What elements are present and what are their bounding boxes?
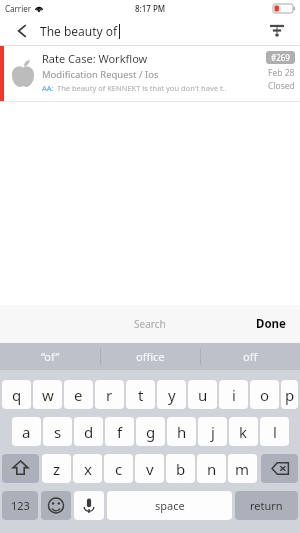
button[interactable]: Done (256, 316, 286, 332)
staticText: 123 (11, 498, 30, 513)
button[interactable]: f (105, 417, 134, 446)
button[interactable]: u (188, 380, 217, 409)
staticText: return (250, 498, 283, 513)
staticText: g (146, 422, 156, 442)
staticText: y (168, 385, 176, 405)
button[interactable]: i (219, 380, 248, 409)
staticText: h (177, 422, 187, 442)
staticText: s (54, 422, 62, 442)
staticText: Modification Request / Ios (42, 68, 159, 81)
staticText: w (42, 385, 54, 405)
button[interactable]: p (281, 380, 298, 409)
button[interactable]: “of” (0, 343, 100, 370)
button[interactable]: Dictation (74, 491, 104, 520)
staticText: a (22, 422, 31, 442)
staticText: c (115, 459, 123, 479)
staticText: n (207, 459, 217, 479)
staticText: u (198, 385, 208, 405)
button[interactable]: b (166, 454, 195, 483)
button[interactable]: w (33, 380, 62, 409)
staticText: m (235, 459, 250, 479)
button[interactable]: j (198, 417, 227, 446)
staticText: j (211, 422, 215, 442)
staticText: q (12, 385, 22, 405)
staticText: The beauty of KENNEKT is that you don't … (57, 83, 227, 93)
button[interactable]: e (64, 380, 93, 409)
staticText: d (84, 422, 94, 442)
staticText: i (232, 385, 236, 405)
button[interactable]: s (43, 417, 72, 446)
button[interactable]: n (197, 454, 226, 483)
staticText: o (260, 385, 270, 405)
staticText: e (74, 385, 83, 405)
button[interactable]: Back (10, 19, 34, 43)
button[interactable]: off (201, 343, 300, 370)
staticText: k (239, 422, 248, 442)
button[interactable]: Delete (261, 454, 298, 483)
staticText: #269 (271, 52, 290, 63)
button[interactable]: t (126, 380, 155, 409)
staticText: Closed (268, 80, 295, 92)
button[interactable]: m (228, 454, 257, 483)
staticText: t (138, 385, 144, 405)
button[interactable]: 123 (2, 491, 38, 520)
button[interactable]: Rate Case: Workflow (0, 46, 300, 101)
button[interactable]: a (12, 417, 41, 446)
button[interactable]: l (260, 417, 289, 446)
staticText: The beauty of (40, 23, 118, 39)
button[interactable]: space (107, 491, 232, 520)
staticText: AA: (42, 83, 54, 93)
staticText: Feb 28 (268, 67, 295, 79)
button[interactable]: h (167, 417, 196, 446)
staticText: p (285, 385, 295, 405)
button[interactable]: g (136, 417, 165, 446)
staticText: 8:17 PM (135, 3, 166, 14)
button[interactable]: return (235, 491, 298, 520)
staticText: v (146, 459, 154, 479)
button[interactable]: v (135, 454, 164, 483)
staticText: Done (256, 316, 286, 332)
staticText: Carrier (5, 3, 32, 14)
button[interactable]: z (42, 454, 71, 483)
staticText: b (176, 459, 186, 479)
button[interactable]: Search (134, 317, 166, 331)
button[interactable]: o (250, 380, 279, 409)
staticText: r (106, 385, 113, 405)
button[interactable]: q (2, 380, 31, 409)
button[interactable]: d (74, 417, 103, 446)
button[interactable]: r (95, 380, 124, 409)
staticText: space (155, 498, 185, 513)
staticText: f (117, 422, 123, 442)
button[interactable]: office (101, 343, 200, 370)
button[interactable]: x (73, 454, 102, 483)
staticText: office (136, 349, 165, 364)
button[interactable]: c (104, 454, 133, 483)
staticText: x (84, 459, 92, 479)
button[interactable]: Shift (2, 454, 39, 483)
button[interactable]: y (157, 380, 186, 409)
staticText: z (53, 459, 61, 479)
button[interactable]: Filter (264, 18, 290, 44)
button[interactable]: k (229, 417, 258, 446)
staticText: off (243, 349, 258, 364)
staticText: “of” (41, 349, 60, 364)
staticText: Rate Case: Workflow (42, 51, 148, 66)
staticText: l (273, 422, 277, 442)
button[interactable]: Emoji (41, 491, 71, 520)
